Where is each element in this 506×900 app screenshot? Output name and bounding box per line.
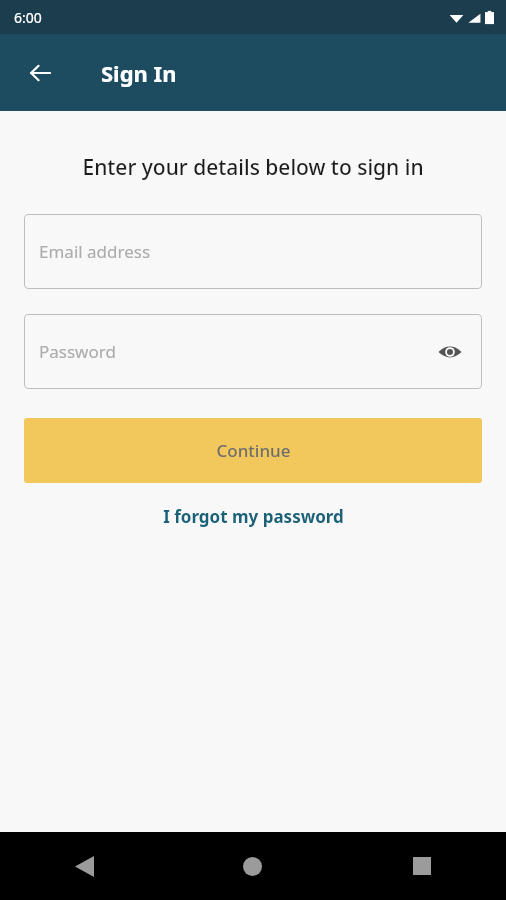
- button[interactable]: Home: [168, 832, 337, 900]
- button[interactable]: Password: [24, 314, 482, 389]
- staticText: Continue: [216, 439, 291, 462]
- button[interactable]: Back: [0, 832, 168, 900]
- staticText: I forgot my password: [163, 505, 344, 528]
- button[interactable]: Recent apps: [337, 832, 506, 900]
- staticText: Enter your details below to sign in: [0, 153, 506, 182]
- staticText: Password: [39, 340, 433, 363]
- button[interactable]: I forgot my password: [0, 505, 506, 528]
- button[interactable]: Show password: [433, 335, 467, 369]
- button[interactable]: Email address: [24, 214, 482, 289]
- button[interactable]: Continue: [24, 418, 482, 483]
- staticText: Email address: [39, 240, 467, 263]
- staticText: 6:00: [14, 8, 42, 27]
- button[interactable]: Back: [18, 51, 62, 95]
- staticText: Sign In: [101, 58, 177, 88]
